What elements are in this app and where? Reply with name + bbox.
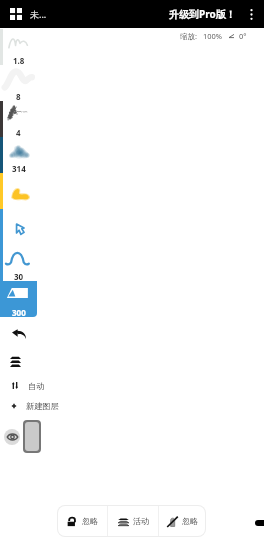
staticText: 100% bbox=[203, 31, 223, 41]
staticText: 30 bbox=[14, 271, 24, 282]
button[interactable]: 升级到Pro版！ bbox=[167, 3, 238, 25]
button[interactable]: 新建图层 bbox=[11, 399, 59, 412]
button[interactable]: More options bbox=[242, 5, 260, 23]
button[interactable]: Undo bbox=[4, 323, 33, 344]
staticText: 8 bbox=[16, 91, 21, 102]
button[interactable]: 自动 bbox=[12, 379, 45, 392]
button[interactable]: 忽略 bbox=[159, 506, 205, 536]
staticText: 升级到Pro版！ bbox=[169, 7, 236, 21]
staticText: 活动 bbox=[133, 516, 149, 526]
button[interactable]: Layers bbox=[2, 350, 28, 372]
button[interactable]: Gallery bbox=[4, 2, 28, 26]
staticText: 314 bbox=[12, 163, 26, 174]
staticText: 0° bbox=[239, 31, 247, 41]
button[interactable]: 30 bbox=[0, 245, 37, 281]
staticText: 4 bbox=[16, 127, 21, 138]
button[interactable]: 4 bbox=[0, 101, 37, 137]
button[interactable]: 300 bbox=[0, 281, 37, 317]
button[interactable]: 忽略 bbox=[58, 506, 107, 536]
staticText: 未... bbox=[30, 8, 47, 20]
staticText: 忽略 bbox=[82, 516, 98, 526]
button[interactable]: 8 bbox=[0, 65, 37, 101]
staticText: 缩放: bbox=[180, 31, 198, 41]
button[interactable] bbox=[0, 209, 37, 245]
button[interactable]: Open side panel bbox=[255, 520, 264, 526]
staticText: 新建图层 bbox=[26, 401, 59, 411]
button[interactable]: 活动 bbox=[108, 506, 158, 536]
button[interactable] bbox=[0, 173, 37, 209]
staticText: 300 bbox=[12, 307, 26, 317]
staticText: 忽略 bbox=[182, 516, 198, 526]
staticText: 1.8 bbox=[13, 55, 25, 66]
button[interactable]: 1.8 bbox=[0, 29, 37, 65]
button[interactable]: Toggle layer visibility bbox=[4, 429, 20, 445]
button[interactable]: 314 bbox=[0, 137, 37, 173]
button[interactable] bbox=[25, 422, 39, 451]
staticText: 自动 bbox=[28, 381, 45, 391]
